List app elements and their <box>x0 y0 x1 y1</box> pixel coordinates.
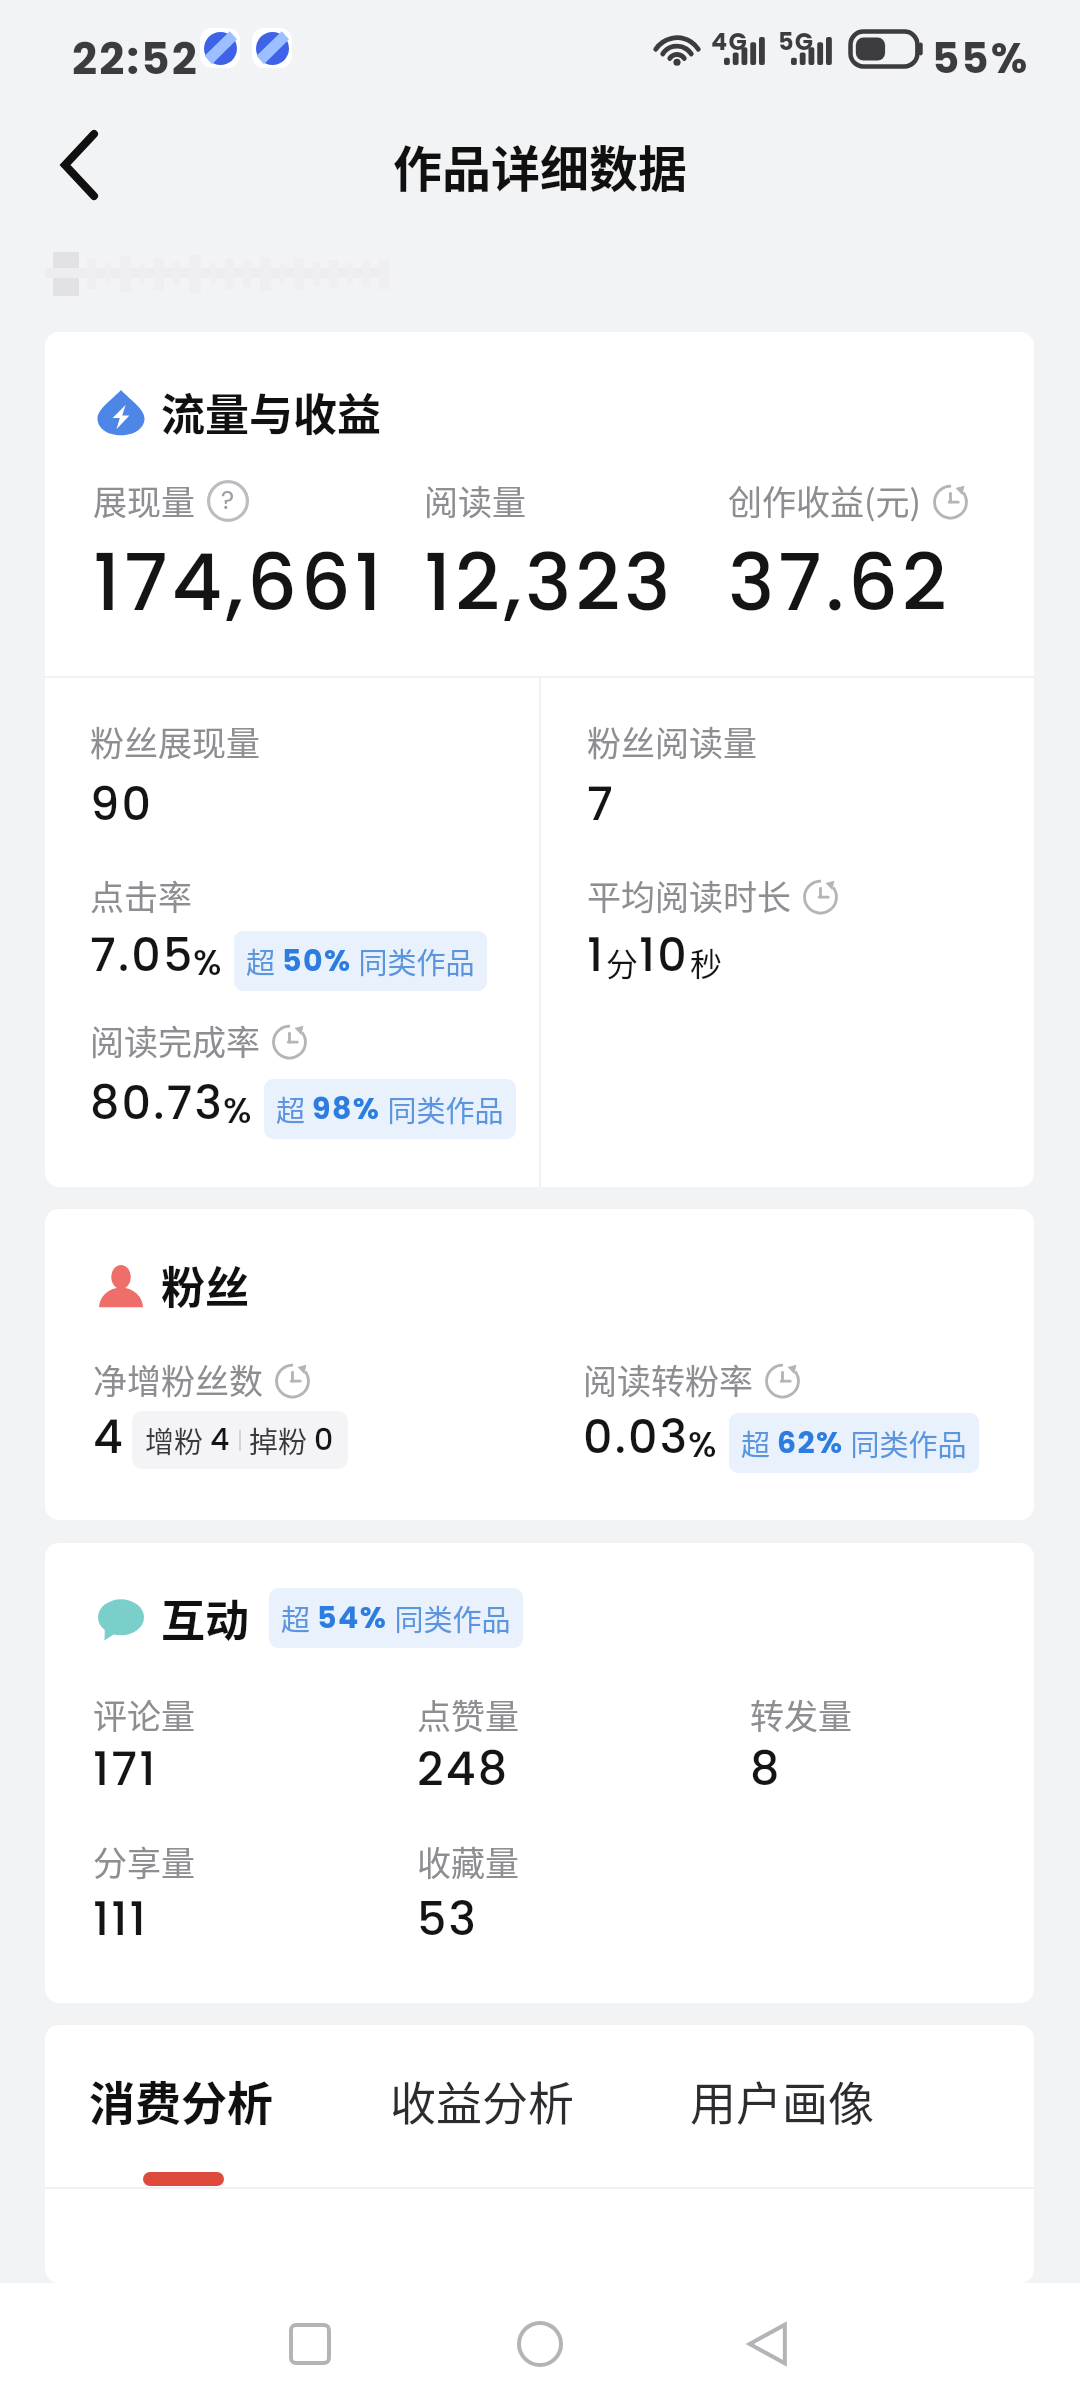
staticText: ? <box>221 483 236 518</box>
staticText: 111 <box>93 1887 148 1951</box>
staticText: 阅读转粉率 <box>583 1355 753 1404</box>
staticText: 阅读完成率 <box>90 1016 260 1065</box>
staticText: 转发量 <box>750 1690 852 1739</box>
staticText: 90 <box>90 772 154 836</box>
staticText: 超 <box>276 1088 312 1130</box>
staticText: 4G <box>711 25 748 59</box>
staticText: 5G <box>778 25 815 59</box>
staticText: 流量与收益 <box>161 380 381 444</box>
staticText: 10 <box>639 923 690 987</box>
staticText: 53 <box>417 1887 479 1951</box>
staticText: 超 <box>741 1422 777 1464</box>
staticText: 7 <box>587 772 615 836</box>
staticText: 1 <box>587 923 606 987</box>
staticText: 7.05 <box>90 923 195 987</box>
button[interactable]: Home <box>492 2296 588 2392</box>
staticText: 掉粉 <box>249 1419 314 1461</box>
staticText: 评论量 <box>93 1690 195 1739</box>
staticText: 62% <box>777 1422 844 1464</box>
staticText: 50% <box>282 940 352 982</box>
button[interactable]: 收益分析 <box>390 2051 574 2187</box>
staticText: 37.62 <box>728 528 951 637</box>
staticText: % <box>193 937 224 987</box>
staticText: 消费分析 <box>89 2067 273 2134</box>
staticText: 同类作品 <box>388 1597 511 1639</box>
staticText: 174,661 <box>93 528 386 637</box>
staticText: 4 <box>93 1405 125 1469</box>
staticText: 分 <box>606 939 639 985</box>
staticText: 作品详细数据 <box>393 130 688 201</box>
staticText: 粉丝阅读量 <box>587 717 757 766</box>
staticText: 创作收益(元) <box>728 476 921 525</box>
staticText: 0 <box>314 1419 335 1461</box>
staticText: 净增粉丝数 <box>93 1355 263 1404</box>
staticText: 22:52 <box>72 28 200 90</box>
staticText: 点赞量 <box>417 1690 519 1739</box>
button[interactable]: Recents <box>262 2296 358 2392</box>
button[interactable]: 用户画像 <box>690 2051 874 2187</box>
staticText: 171 <box>93 1737 158 1801</box>
staticText: 同类作品 <box>381 1088 504 1130</box>
staticText: 平均阅读时长 <box>587 871 791 920</box>
staticText: 分享量 <box>93 1837 195 1886</box>
staticText: 收藏量 <box>417 1837 519 1886</box>
staticText: 粉丝展现量 <box>90 717 260 766</box>
staticText: 互动 <box>161 1586 249 1650</box>
staticText: 4 <box>210 1419 231 1461</box>
staticText: 超 <box>281 1597 317 1639</box>
staticText: 0.03 <box>583 1405 690 1469</box>
staticText: 展现量 <box>93 476 195 525</box>
staticText: % <box>223 1085 254 1135</box>
staticText: 248 <box>417 1737 510 1801</box>
staticText: 80.73 <box>90 1071 225 1135</box>
staticText: 秒 <box>690 939 723 985</box>
staticText: 8 <box>750 1737 782 1801</box>
staticText: 55% <box>932 29 1030 88</box>
button[interactable]: Back <box>29 115 129 215</box>
staticText: % <box>688 1419 719 1469</box>
staticText: 阅读量 <box>424 476 526 525</box>
staticText: 收益分析 <box>390 2067 574 2134</box>
button[interactable]: Back <box>721 2296 817 2392</box>
staticText: 54% <box>317 1597 388 1639</box>
button[interactable]: 消费分析 <box>89 2051 273 2187</box>
staticText: 98% <box>312 1088 381 1130</box>
staticText: 点击率 <box>90 871 192 920</box>
staticText: 用户画像 <box>690 2067 874 2134</box>
staticText: 超 <box>246 940 282 982</box>
staticText: 粉丝 <box>161 1253 249 1317</box>
staticText: 12,323 <box>424 528 674 637</box>
staticText: 增粉 <box>145 1419 210 1461</box>
staticText: 同类作品 <box>844 1422 967 1464</box>
staticText: 同类作品 <box>352 940 475 982</box>
